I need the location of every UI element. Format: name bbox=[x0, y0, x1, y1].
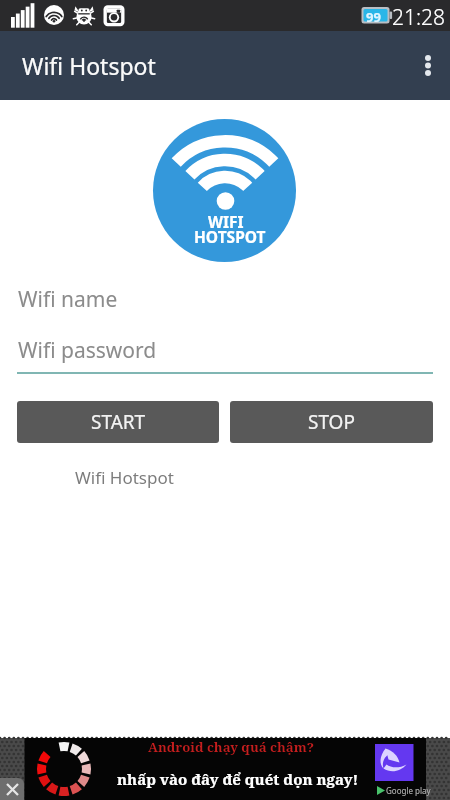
staticText: HOTSPOT bbox=[194, 226, 266, 247]
staticText: Wifi Hotspot bbox=[22, 50, 156, 81]
staticText: Wifi name bbox=[18, 285, 118, 314]
button[interactable]: STOP bbox=[230, 401, 433, 443]
staticText: WIFI bbox=[208, 211, 244, 232]
staticText: Wifi password bbox=[18, 336, 157, 365]
staticText: Android chạy quá chậm? bbox=[148, 738, 314, 756]
button[interactable]: More options bbox=[406, 31, 450, 100]
staticText: STOP bbox=[308, 409, 355, 435]
staticText: Wifi Hotspot bbox=[75, 466, 174, 489]
staticText: nhấp vào đây để quét dọn ngay! bbox=[117, 769, 359, 790]
staticText: 99 bbox=[366, 8, 381, 26]
staticText: 21:28 bbox=[392, 3, 446, 32]
staticText: Google play bbox=[386, 785, 431, 796]
button[interactable]: Close ad bbox=[0, 778, 24, 800]
button[interactable]: START bbox=[17, 401, 219, 443]
staticText: START bbox=[91, 409, 146, 435]
